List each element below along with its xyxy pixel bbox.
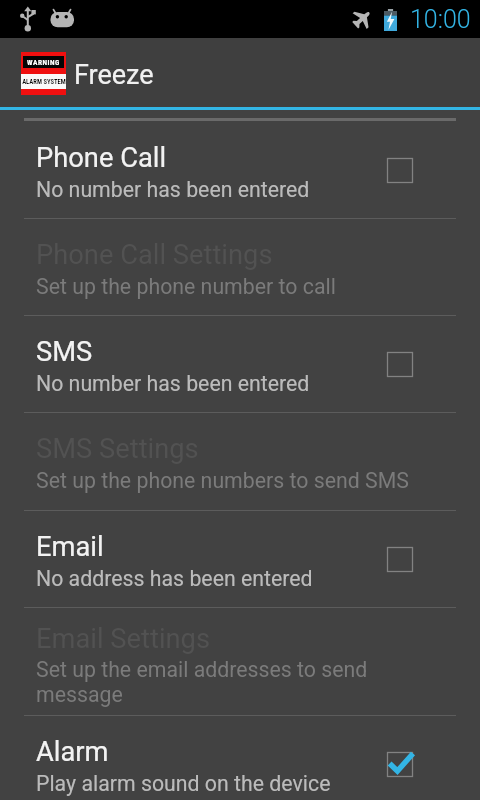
button[interactable]: Phone Call checkbox xyxy=(387,158,413,183)
button[interactable]: SMS Settings xyxy=(0,412,480,510)
staticText: No address has been entered xyxy=(36,566,436,591)
button[interactable]: Alarm xyxy=(0,715,480,800)
staticText: SMS xyxy=(36,336,436,368)
button[interactable]: Email xyxy=(0,510,480,607)
button[interactable]: SMS xyxy=(0,315,480,412)
button[interactable]: Alarm checkbox xyxy=(387,752,413,777)
staticText: Phone Call xyxy=(36,142,436,174)
staticText: Set up the email addresses to send messa… xyxy=(36,657,436,707)
button[interactable]: Freeze, home xyxy=(0,38,170,107)
staticText: Play alarm sound on the device xyxy=(36,771,436,796)
button[interactable]: Phone Call Settings xyxy=(0,218,480,315)
button[interactable]: Phone Call xyxy=(0,121,480,218)
staticText: SMS Settings xyxy=(36,433,436,465)
button[interactable]: Email Settings xyxy=(0,607,480,716)
staticText: Set up the phone numbers to send SMS xyxy=(36,468,436,493)
staticText: Freeze xyxy=(74,59,154,91)
staticText: Phone Call Settings xyxy=(36,239,436,271)
button[interactable]: Email checkbox xyxy=(387,547,413,572)
staticText: WARNING xyxy=(27,58,60,67)
button[interactable]: SMS checkbox xyxy=(387,352,413,377)
staticText: Set up the phone number to call xyxy=(36,274,436,299)
staticText: No number has been entered xyxy=(36,177,436,202)
staticText: Email xyxy=(36,531,436,563)
staticText: ALARM SYSTEM xyxy=(22,78,66,86)
staticText: No number has been entered xyxy=(36,371,436,396)
staticText: Email Settings xyxy=(36,623,436,655)
staticText: 10:00 xyxy=(410,5,471,34)
staticText: Alarm xyxy=(36,736,436,768)
